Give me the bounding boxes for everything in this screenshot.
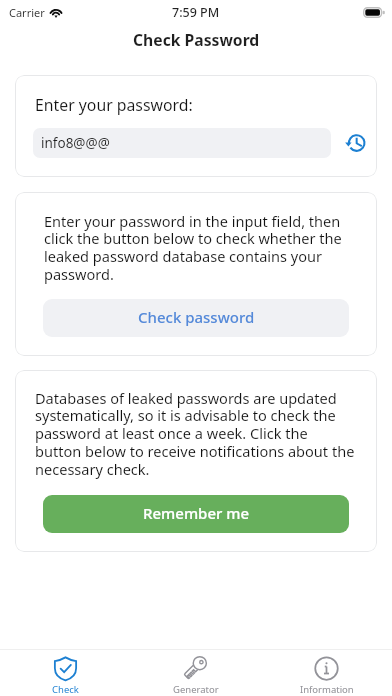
staticText: Databases of leaked passwords are update…	[35, 388, 357, 479]
button[interactable]: info8@@@	[33, 128, 331, 158]
button[interactable]: Remember me	[43, 495, 349, 533]
staticText: Enter your password in the input field, …	[44, 211, 348, 284]
staticText: Generator	[173, 683, 219, 696]
button[interactable]: Password history	[345, 132, 367, 154]
button[interactable]: Check	[0, 650, 130, 696]
button[interactable]: Information	[261, 650, 392, 696]
staticText: Check password	[138, 307, 255, 327]
staticText: Information	[300, 683, 354, 696]
button[interactable]: Check password	[43, 299, 349, 337]
staticText: Check Password	[133, 29, 260, 50]
staticText: info8@@@	[41, 134, 110, 152]
staticText: Remember me	[143, 503, 250, 523]
staticText: Check	[52, 683, 79, 696]
staticText: Enter your password:	[35, 94, 193, 116]
staticText: Carrier	[9, 5, 45, 20]
button[interactable]: Generator	[130, 650, 261, 696]
staticText: 7:59 PM	[172, 4, 220, 21]
